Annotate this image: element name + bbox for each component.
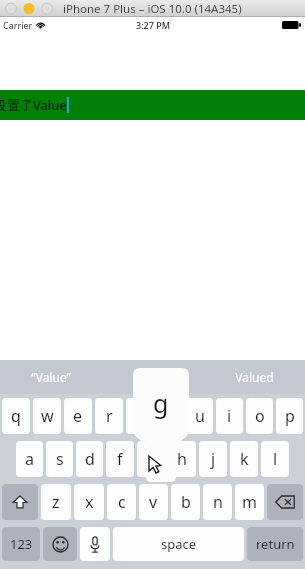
- button[interactable]: s: [46, 441, 73, 477]
- button[interactable]: u: [186, 398, 213, 434]
- button[interactable]: x: [74, 484, 104, 520]
- button[interactable]: o: [246, 398, 273, 434]
- button[interactable]: Valued: [203, 360, 305, 394]
- staticText: f: [117, 448, 123, 470]
- button[interactable]: [137, 441, 165, 477]
- button[interactable]: l: [261, 441, 289, 477]
- staticText: y: [165, 405, 174, 427]
- button[interactable]: Dictation: [80, 527, 110, 561]
- staticText: u: [195, 405, 205, 427]
- button[interactable]: q: [2, 398, 30, 434]
- button[interactable]: h: [168, 441, 196, 477]
- button[interactable]: v: [139, 484, 168, 520]
- staticText: b: [181, 491, 191, 513]
- staticText: o: [255, 405, 265, 427]
- staticText: l: [273, 448, 278, 470]
- staticText: 123: [10, 535, 33, 553]
- button[interactable]: space: [113, 527, 244, 561]
- button[interactable]: e: [64, 398, 92, 434]
- staticText: j: [211, 448, 216, 470]
- staticText: Valued: [235, 369, 274, 385]
- staticText: g: [153, 386, 169, 420]
- button[interactable]: p: [276, 398, 303, 434]
- staticText: k: [240, 448, 249, 470]
- button[interactable]: y: [156, 398, 183, 434]
- staticText: space: [161, 535, 197, 553]
- button[interactable]: r: [95, 398, 123, 434]
- staticText: a: [25, 448, 34, 470]
- staticText: c: [118, 491, 126, 513]
- staticText: r: [106, 405, 113, 427]
- staticText: Carrier: [3, 19, 33, 31]
- button[interactable]: return: [247, 527, 303, 561]
- button[interactable]: f: [106, 441, 134, 477]
- button[interactable]: 设置了Value: [0, 90, 305, 120]
- button[interactable]: m: [235, 484, 264, 520]
- staticText: x: [85, 491, 94, 513]
- button[interactable]: Delete: [267, 484, 303, 520]
- button[interactable]: z: [41, 484, 71, 520]
- button[interactable]: b: [171, 484, 200, 520]
- button[interactable]: c: [107, 484, 136, 520]
- staticText: i: [227, 405, 232, 427]
- staticText: e: [73, 405, 83, 427]
- button[interactable]: Shift: [2, 484, 38, 520]
- staticText: v: [149, 491, 158, 513]
- staticText: m: [242, 491, 257, 513]
- button[interactable]: a: [16, 441, 43, 477]
- staticText: h: [177, 448, 187, 470]
- button[interactable]: “Value”: [0, 360, 101, 394]
- button[interactable]: t: [126, 398, 153, 434]
- button[interactable]: i: [216, 398, 243, 434]
- button[interactable]: k: [230, 441, 258, 477]
- button[interactable]: Values: [101, 360, 203, 394]
- staticText: d: [85, 448, 95, 470]
- staticText: 设置了Value: [0, 96, 67, 114]
- staticText: n: [213, 491, 223, 513]
- button[interactable]: d: [76, 441, 103, 477]
- button[interactable]: 123: [2, 527, 40, 561]
- staticText: iPhone 7 Plus – iOS 10.0 (14A345): [63, 1, 242, 17]
- staticText: w: [41, 405, 54, 427]
- staticText: s: [56, 448, 64, 470]
- button[interactable]: j: [199, 441, 227, 477]
- staticText: q: [11, 405, 21, 427]
- staticText: 3:27 PM: [136, 19, 170, 31]
- button[interactable]: Emoji: [43, 527, 77, 561]
- staticText: return: [256, 535, 295, 553]
- staticText: “Value”: [31, 369, 71, 385]
- button[interactable]: n: [203, 484, 232, 520]
- staticText: p: [285, 405, 295, 427]
- button[interactable]: w: [33, 398, 61, 434]
- staticText: z: [52, 491, 60, 513]
